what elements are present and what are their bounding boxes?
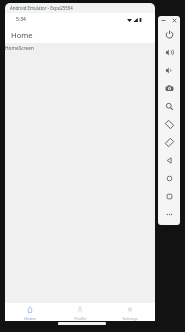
staticText: 5:34 bbox=[16, 16, 26, 23]
button[interactable]: Back bbox=[158, 151, 180, 169]
button[interactable]: Volume up bbox=[158, 43, 180, 61]
button[interactable]: Power bbox=[158, 25, 180, 43]
button[interactable]: Close bbox=[170, 16, 179, 25]
button[interactable]: Settings bbox=[105, 303, 155, 321]
button[interactable]: Rotate right bbox=[158, 133, 180, 151]
staticText: HomeScreen bbox=[5, 45, 34, 52]
button[interactable]: Home bbox=[5, 303, 55, 321]
staticText: Settings bbox=[122, 316, 138, 321]
staticText: Home bbox=[11, 30, 33, 40]
button[interactable]: Minimize bbox=[159, 16, 168, 25]
button[interactable]: Profile bbox=[55, 303, 105, 321]
button[interactable]: Zoom bbox=[158, 97, 180, 115]
button[interactable]: Rotate left bbox=[158, 115, 180, 133]
staticText: Android Emulator - Expo25554 bbox=[10, 5, 73, 11]
staticText: Home bbox=[24, 316, 36, 321]
button[interactable]: Home bbox=[158, 169, 180, 187]
button[interactable]: More bbox=[158, 205, 180, 223]
button[interactable]: Volume down bbox=[158, 61, 180, 79]
button[interactable]: Screenshot bbox=[158, 79, 180, 97]
button[interactable]: Overview bbox=[158, 187, 180, 205]
staticText: Profile bbox=[74, 316, 87, 321]
